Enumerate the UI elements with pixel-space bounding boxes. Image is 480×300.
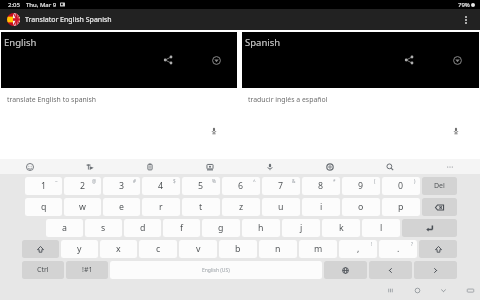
button[interactable]: Expand — [208, 52, 224, 68]
button[interactable]: Share — [401, 52, 417, 68]
button[interactable]: i — [302, 198, 340, 216]
staticText: translate English to spanish — [7, 95, 97, 104]
button[interactable]: 6 — [222, 177, 260, 195]
staticText: , — [357, 243, 360, 255]
button[interactable]: c — [139, 240, 177, 258]
button[interactable]: w — [64, 198, 101, 216]
button[interactable]: 1 — [25, 177, 62, 195]
button[interactable]: v — [179, 240, 217, 258]
button[interactable]: r — [142, 198, 180, 216]
button[interactable]: 2 — [64, 177, 101, 195]
staticText: q — [41, 201, 47, 213]
button[interactable]: t — [182, 198, 220, 216]
button[interactable]: 3 — [103, 177, 140, 195]
button[interactable]: 0 — [382, 177, 420, 195]
staticText: Spanish — [245, 36, 281, 49]
button[interactable]: right — [414, 261, 457, 279]
staticText: k — [339, 222, 344, 234]
button[interactable]: Clipboard — [120, 159, 180, 174]
button[interactable]: Home — [409, 282, 425, 298]
staticText: v — [196, 243, 201, 255]
button[interactable]: Search — [360, 159, 420, 174]
staticText: 3 — [119, 180, 125, 192]
staticText: 5 — [198, 180, 204, 192]
button[interactable]: More options — [459, 13, 473, 27]
staticText: & — [292, 178, 296, 184]
staticText: * — [333, 178, 336, 184]
button[interactable]: Ctrl — [22, 261, 64, 279]
button[interactable]: z — [222, 198, 260, 216]
button[interactable]: m — [299, 240, 337, 258]
button[interactable]: Translate — [60, 159, 120, 174]
staticText: 0 — [398, 180, 404, 192]
button[interactable]: Hide keyboard — [462, 282, 478, 298]
button[interactable]: , — [339, 240, 377, 258]
button[interactable]: Recent apps — [382, 282, 398, 298]
staticText: % — [212, 178, 216, 184]
staticText: ( — [374, 178, 376, 184]
button[interactable]: . — [379, 240, 417, 258]
button[interactable]: Voice input — [240, 159, 300, 174]
staticText: f — [180, 222, 184, 234]
button[interactable]: More — [420, 159, 480, 174]
staticText: g — [218, 222, 224, 234]
button[interactable]: Settings — [300, 159, 360, 174]
button[interactable]: Voice input — [208, 125, 220, 137]
staticText: !#1 — [82, 265, 93, 275]
staticText: x — [116, 243, 121, 255]
button[interactable]: left — [369, 261, 412, 279]
button[interactable]: k — [322, 219, 360, 237]
staticText: Translator English Spanish — [25, 15, 112, 25]
button[interactable]: Del — [422, 177, 457, 195]
button[interactable]: shift — [419, 240, 457, 258]
staticText: 1 — [41, 180, 47, 192]
button[interactable]: Stickers — [180, 159, 240, 174]
button[interactable]: 8 — [302, 177, 340, 195]
button[interactable]: 4 — [142, 177, 180, 195]
staticText: traducir inglés a español — [248, 95, 328, 104]
button[interactable]: backspace — [422, 198, 457, 216]
staticText: ) — [414, 178, 416, 184]
staticText: a — [62, 222, 67, 234]
button[interactable]: Back — [435, 282, 451, 298]
staticText: o — [358, 201, 364, 213]
staticText: $ — [173, 178, 176, 184]
button[interactable]: d — [124, 219, 161, 237]
button[interactable]: globe — [324, 261, 367, 279]
button[interactable]: u — [262, 198, 300, 216]
button[interactable]: q — [25, 198, 62, 216]
button[interactable]: s — [85, 219, 122, 237]
button[interactable]: e — [103, 198, 140, 216]
button[interactable]: j — [282, 219, 320, 237]
button[interactable]: 5 — [182, 177, 220, 195]
staticText: 9 — [358, 180, 364, 192]
button[interactable]: g — [202, 219, 240, 237]
button[interactable]: a — [46, 219, 83, 237]
staticText: 2:05 — [8, 1, 20, 9]
button[interactable]: Share — [160, 52, 176, 68]
button[interactable]: f — [163, 219, 200, 237]
button[interactable]: Expand — [449, 52, 465, 68]
button[interactable]: y — [61, 240, 98, 258]
staticText: 7 — [278, 180, 284, 192]
button[interactable]: shift — [22, 240, 59, 258]
staticText: ! — [371, 241, 373, 247]
button[interactable]: p — [382, 198, 420, 216]
button[interactable]: 9 — [342, 177, 380, 195]
staticText: t — [199, 201, 203, 213]
button[interactable]: English (US) — [110, 261, 322, 279]
button[interactable]: Emoji — [0, 159, 60, 174]
staticText: Ctrl — [37, 265, 49, 275]
staticText: l — [380, 222, 383, 234]
button[interactable]: !#1 — [66, 261, 108, 279]
button[interactable]: 7 — [262, 177, 300, 195]
button[interactable]: n — [259, 240, 297, 258]
button[interactable]: o — [342, 198, 380, 216]
button[interactable]: b — [219, 240, 257, 258]
button[interactable]: x — [100, 240, 137, 258]
button[interactable]: h — [242, 219, 280, 237]
button[interactable]: l — [362, 219, 400, 237]
staticText: @ — [92, 178, 97, 184]
button[interactable]: enter — [402, 219, 457, 237]
button[interactable]: Voice input — [450, 125, 462, 137]
